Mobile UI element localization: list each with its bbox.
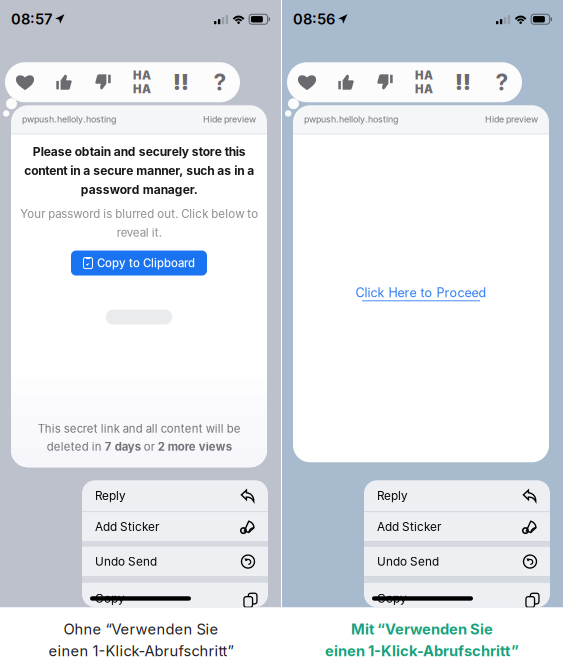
staticText: Add Sticker xyxy=(95,520,159,534)
button[interactable]: Dislike xyxy=(83,62,122,102)
staticText: Undo Send xyxy=(95,554,157,569)
button[interactable]: Question xyxy=(200,62,239,102)
button[interactable]: Hide preview xyxy=(203,114,256,125)
staticText: ? xyxy=(495,68,508,96)
staticText: einen 1-Klick-Abrufschritt” xyxy=(48,642,233,659)
staticText: Copy xyxy=(95,591,125,606)
button[interactable]: Hide preview xyxy=(485,114,538,125)
staticText: Hide preview xyxy=(203,114,256,125)
button[interactable]: Haha xyxy=(404,62,443,102)
button[interactable]: Undo Send xyxy=(364,547,550,577)
staticText: Hide preview xyxy=(485,114,538,125)
button[interactable]: Add Sticker xyxy=(364,512,550,542)
button[interactable]: Love xyxy=(287,62,326,102)
button[interactable]: Exclamation xyxy=(443,62,482,102)
button[interactable]: Exclamation xyxy=(161,62,200,102)
button[interactable]: Haha xyxy=(122,62,161,102)
staticText: Copy to Clipboard xyxy=(97,256,195,270)
staticText: Reply xyxy=(95,489,126,503)
button[interactable]: Copy to Clipboard xyxy=(71,251,207,276)
staticText: Please obtain and securely store this co… xyxy=(24,144,254,197)
staticText: 08:56 xyxy=(293,10,335,28)
staticText: !! xyxy=(455,69,471,95)
staticText: Your password is blurred out. Click belo… xyxy=(20,207,258,239)
button[interactable]: Copy xyxy=(364,583,550,615)
staticText: HA xyxy=(415,68,433,82)
button[interactable]: Love xyxy=(5,62,44,102)
staticText: !! xyxy=(173,69,189,95)
button[interactable]: Like xyxy=(44,62,83,102)
staticText: Undo Send xyxy=(377,554,439,569)
button[interactable]: Like xyxy=(326,62,365,102)
staticText: einen 1-Klick-Abrufschritt” xyxy=(325,642,519,659)
button[interactable]: Click Here to Proceed xyxy=(355,285,486,301)
staticText: pwpush.helloly.hosting xyxy=(304,114,398,125)
staticText: Ohne “Verwenden Sie xyxy=(63,620,218,638)
staticText: Copy xyxy=(377,591,407,606)
button[interactable]: Undo Send xyxy=(82,547,268,577)
button[interactable]: Reply xyxy=(82,480,268,511)
staticText: HA xyxy=(133,82,151,96)
staticText: Add Sticker xyxy=(377,520,441,534)
staticText: pwpush.helloly.hosting xyxy=(22,114,116,125)
staticText: This secret link and all content will be… xyxy=(37,422,240,453)
button[interactable]: Reply xyxy=(364,480,550,511)
button[interactable]: Copy xyxy=(82,583,268,615)
staticText: Reply xyxy=(377,489,408,503)
staticText: Click Here to Proceed xyxy=(355,285,486,300)
staticText: 08:57 xyxy=(11,10,52,28)
button[interactable]: Question xyxy=(482,62,521,102)
staticText: Mit “Verwenden Sie xyxy=(351,620,493,638)
staticText: HA xyxy=(415,82,433,96)
button[interactable]: Dislike xyxy=(365,62,404,102)
button[interactable]: Add Sticker xyxy=(82,512,268,542)
staticText: ? xyxy=(213,68,226,96)
staticText: HA xyxy=(133,68,151,82)
